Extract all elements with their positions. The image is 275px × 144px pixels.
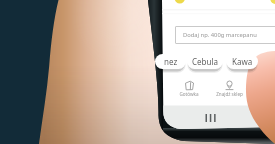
button[interactable]: nez xyxy=(155,54,186,69)
button[interactable]: Dodaj np. 400g marcepanu xyxy=(175,26,275,44)
button[interactable]: Cebula xyxy=(187,54,223,69)
staticText: Dodaj np. 400g marcepanu xyxy=(183,31,257,39)
other: Gotówka xyxy=(184,80,195,91)
button[interactable]: Znajdź sklep xyxy=(208,80,250,97)
staticText: Znajdź sklep xyxy=(216,91,243,97)
staticText: Cebula xyxy=(192,56,218,67)
button[interactable]: Gotówka xyxy=(168,80,210,97)
button[interactable]: Kawa xyxy=(226,54,258,69)
other: Znajdź sklep xyxy=(224,80,235,91)
staticText: nez xyxy=(164,56,178,67)
staticText: Kawa xyxy=(232,56,253,67)
staticText: Gotówka xyxy=(179,91,199,97)
